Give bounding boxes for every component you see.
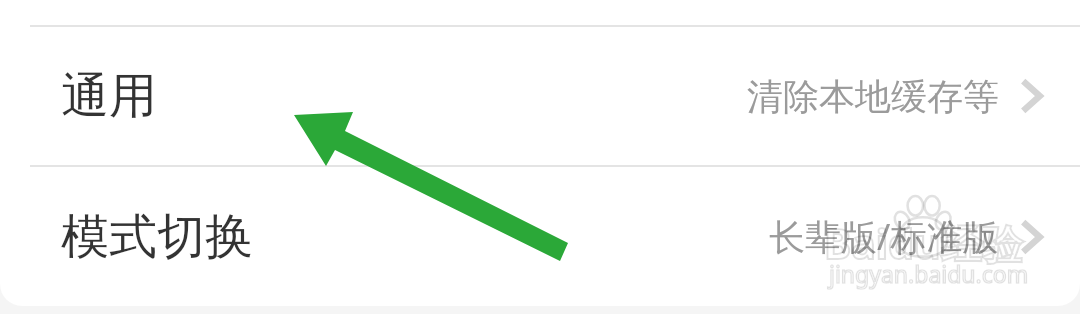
- staticText: 清除本地缓存等: [747, 74, 999, 119]
- staticText: jingyan.baidu.com: [829, 258, 1029, 289]
- staticText: 模式切换: [61, 207, 253, 267]
- button[interactable]: 通用: [0, 27, 1080, 165]
- staticText: 通用: [61, 66, 157, 126]
- other: Open: [1020, 219, 1043, 255]
- button[interactable]: 模式切换: [0, 167, 1080, 306]
- staticText: Baidu经验: [824, 215, 1023, 271]
- staticText: 长辈版/标准版: [769, 212, 999, 261]
- other: Open: [1020, 78, 1043, 114]
